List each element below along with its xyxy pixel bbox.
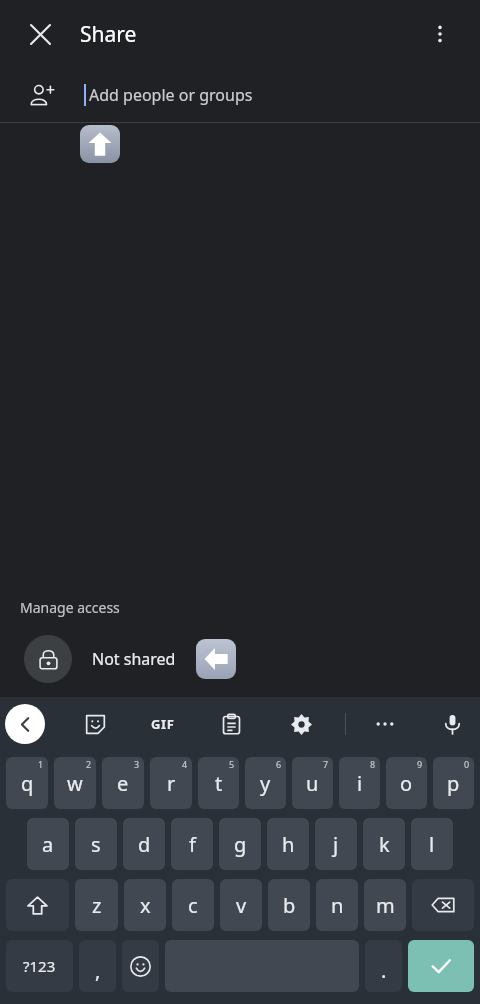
button[interactable]: g	[219, 818, 261, 870]
staticText: l	[429, 831, 435, 858]
button[interactable]: y	[245, 757, 286, 809]
button[interactable]: d	[123, 818, 165, 870]
button[interactable]: Shift	[6, 879, 69, 931]
staticText: 4	[182, 758, 188, 770]
staticText: p	[447, 770, 460, 797]
button[interactable]: Clipboard	[211, 704, 251, 744]
button[interactable]: c	[172, 879, 214, 931]
button[interactable]: Emoji	[122, 940, 159, 992]
staticText: u	[306, 770, 319, 797]
staticText: Share	[80, 20, 137, 49]
button[interactable]: ?123	[6, 940, 73, 992]
button[interactable]: s	[75, 818, 117, 870]
button[interactable]: a	[27, 818, 69, 870]
button[interactable]: GIF	[143, 704, 183, 744]
button[interactable]: j	[315, 818, 357, 870]
button[interactable]: .	[365, 940, 402, 992]
button[interactable]: ,	[79, 940, 116, 992]
staticText: Manage access	[20, 598, 120, 617]
staticText: n	[331, 892, 344, 919]
staticText: g	[234, 831, 247, 858]
button[interactable]: More options	[418, 12, 462, 56]
staticText: Not shared	[92, 648, 176, 670]
button[interactable]: Backspace	[412, 879, 474, 931]
button[interactable]: Not shared	[0, 635, 480, 683]
button[interactable]: o	[386, 757, 427, 809]
staticText: o	[400, 770, 413, 797]
button[interactable]: r	[150, 757, 192, 809]
staticText: k	[379, 831, 390, 858]
button[interactable]: e	[102, 757, 144, 809]
button[interactable]: h	[267, 818, 309, 870]
staticText: 9	[417, 758, 423, 770]
staticText: e	[117, 770, 129, 797]
staticText: y	[260, 770, 271, 797]
staticText: 7	[323, 758, 329, 770]
staticText: i	[357, 770, 363, 797]
button[interactable]: x	[124, 879, 166, 931]
staticText: a	[42, 831, 54, 858]
staticText: q	[21, 770, 34, 797]
button[interactable]: Close	[18, 12, 62, 56]
button[interactable]: f	[171, 818, 213, 870]
button[interactable]: p	[433, 757, 474, 809]
button[interactable]: i	[339, 757, 380, 809]
staticText: .	[381, 957, 387, 984]
staticText: w	[67, 770, 83, 797]
staticText: z	[92, 892, 102, 919]
button[interactable]: Back	[5, 704, 45, 744]
staticText: j	[333, 831, 339, 858]
staticText: m	[376, 892, 395, 919]
button[interactable]: b	[268, 879, 310, 931]
button[interactable]: u	[292, 757, 333, 809]
button[interactable]: k	[363, 818, 405, 870]
button[interactable]: More	[365, 704, 405, 744]
staticText: 0	[464, 758, 470, 770]
staticText: 6	[276, 758, 282, 770]
staticText: GIF	[151, 715, 175, 733]
button[interactable]: q	[6, 757, 48, 809]
button[interactable]: Stickers	[75, 704, 115, 744]
staticText: 5	[229, 758, 235, 770]
button[interactable]: Enter	[408, 940, 474, 992]
staticText: v	[236, 892, 247, 919]
button[interactable]: t	[198, 757, 239, 809]
button[interactable]: Voice input	[432, 704, 472, 744]
staticText: 2	[86, 758, 92, 770]
staticText: d	[138, 831, 151, 858]
staticText: ,	[95, 957, 101, 984]
button[interactable]: l	[411, 818, 453, 870]
staticText: x	[140, 892, 151, 919]
button[interactable]: Settings	[281, 704, 321, 744]
staticText: b	[283, 892, 296, 919]
staticText: c	[188, 892, 198, 919]
button[interactable]: n	[316, 879, 358, 931]
button[interactable]: v	[220, 879, 262, 931]
staticText: t	[215, 770, 223, 797]
button[interactable]: z	[75, 879, 118, 931]
staticText: ?123	[23, 956, 56, 976]
staticText: Add people or groups	[89, 84, 253, 106]
staticText: f	[189, 831, 196, 858]
button[interactable]: w	[54, 757, 96, 809]
staticText: s	[91, 831, 101, 858]
button[interactable]: m	[364, 879, 406, 931]
staticText: 3	[134, 758, 140, 770]
staticText: 1	[38, 758, 44, 770]
staticText: 8	[370, 758, 376, 770]
staticText: h	[282, 831, 295, 858]
staticText: r	[167, 770, 176, 797]
button[interactable]: Add people or groups	[0, 68, 480, 122]
